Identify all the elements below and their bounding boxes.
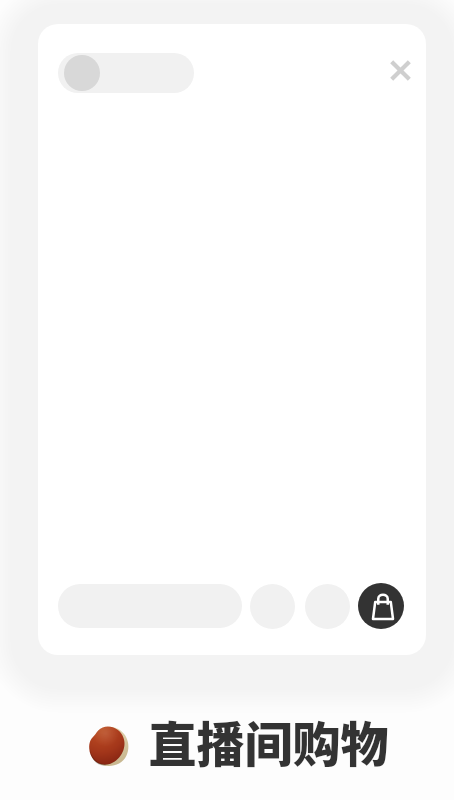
button[interactable]: Shopping bag (358, 583, 404, 629)
button[interactable]: Close (382, 52, 418, 88)
button[interactable]: Like (250, 584, 295, 629)
button[interactable]: Share (305, 584, 350, 629)
button[interactable] (58, 584, 242, 628)
button[interactable] (58, 53, 194, 93)
staticText: 直播间购物 (148, 706, 389, 776)
